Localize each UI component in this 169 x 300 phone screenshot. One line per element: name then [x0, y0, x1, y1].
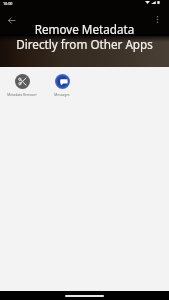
staticText: Messages — [54, 92, 70, 96]
staticText: 10:00 — [3, 1, 13, 6]
staticText: Remove Metadata Directly from Other Apps — [0, 21, 169, 52]
button[interactable]: Messages — [42, 67, 82, 96]
staticText: Metadata Remover — [7, 92, 37, 96]
button[interactable]: Back — [1, 10, 21, 30]
button[interactable]: Metadata Remover — [2, 67, 42, 96]
button[interactable]: More options — [147, 9, 167, 29]
